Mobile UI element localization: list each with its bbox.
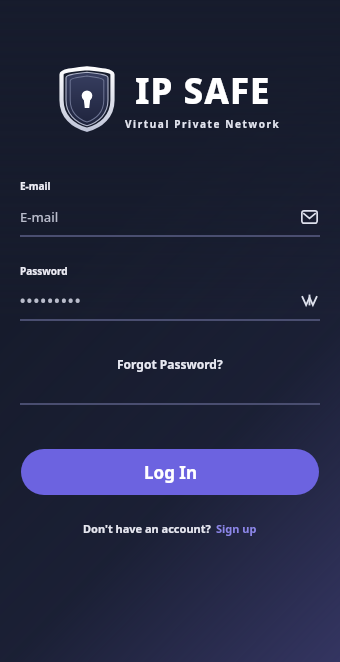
button[interactable]: Log In (21, 449, 319, 495)
button[interactable]: ••••••••• (20, 289, 320, 311)
staticText: E-mail (20, 179, 51, 193)
staticText: Virtual Private Network (125, 117, 281, 131)
button[interactable]: E-mail (298, 206, 320, 228)
staticText: Forgot Password? (117, 356, 223, 372)
staticText: E-mail (20, 208, 298, 226)
staticText: Password (20, 264, 68, 278)
staticText: Log In (144, 461, 197, 484)
staticText: ••••••••• (20, 291, 298, 310)
button[interactable]: Forgot Password? (111, 353, 229, 375)
staticText: IP SAFE (135, 67, 271, 115)
button[interactable]: Show password (298, 289, 320, 311)
button[interactable]: E-mail (20, 206, 320, 228)
staticText: Sign up (216, 521, 257, 536)
button[interactable]: Sign up (216, 521, 257, 536)
staticText: Don't have an account? (83, 521, 211, 536)
